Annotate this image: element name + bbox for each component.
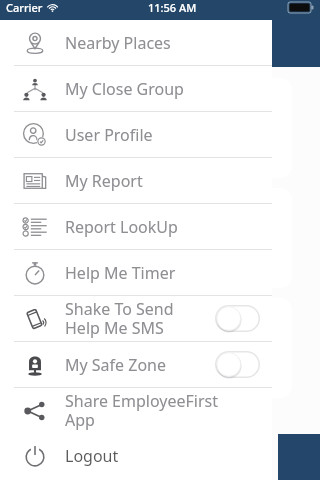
staticText: My Report [65, 170, 143, 192]
button[interactable]: Share EmployeeFirst App [0, 388, 272, 433]
button[interactable]: My Report [0, 158, 272, 203]
staticText: Nearby Places [65, 32, 171, 54]
staticText: Share EmployeeFirst App [65, 390, 218, 431]
staticText: Shake To Send Help Me SMS [65, 298, 215, 339]
button[interactable]: Nearby Places [0, 20, 272, 65]
button[interactable]: My Close Group [0, 66, 272, 111]
staticText: Help Me Timer [65, 262, 176, 284]
button[interactable]: Logout [0, 433, 272, 478]
staticText: User Profile [65, 124, 153, 146]
button[interactable]: Report LookUp [0, 204, 272, 249]
button[interactable]: User Profile [0, 112, 272, 157]
staticText: Lost [162, 355, 182, 369]
button[interactable]: My Safe Zone [0, 342, 272, 387]
staticText: Report LookUp [65, 216, 178, 238]
staticText: My Close Group [65, 78, 184, 100]
button[interactable]: Toggle My Safe Zone [215, 351, 260, 378]
staticText: Location [162, 245, 203, 259]
button[interactable]: Toggle Shake To Send Help Me SMS [215, 305, 260, 332]
button[interactable]: Shake To Send Help Me SMS [0, 296, 272, 341]
staticText: Logout [65, 445, 119, 467]
staticText: My Safe Zone [65, 354, 215, 376]
staticText: Carrier [6, 0, 43, 15]
staticText: 11:56 AM [148, 0, 197, 15]
button[interactable]: Help Me Timer [0, 250, 272, 295]
